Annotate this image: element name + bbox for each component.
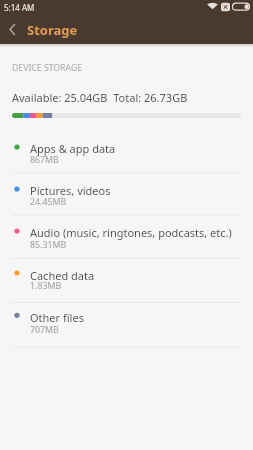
button[interactable] [0,303,253,348]
button[interactable] [0,173,253,215]
staticText: Audio (music, ringtones, podcasts, etc.) [30,225,232,240]
button[interactable] [0,126,253,173]
staticText: 24.45MB [30,196,67,208]
staticText: Pictures, videos [30,183,111,198]
staticText: 5:14 AM [4,2,35,13]
staticText: 85.31MB [30,239,67,251]
staticText: Available: 25.04GB Total: 26.73GB [12,90,188,105]
button[interactable] [0,259,253,303]
staticText: Other files [30,310,84,325]
button[interactable] [0,18,26,44]
staticText: 1.83MB [30,280,62,292]
button[interactable] [0,215,253,259]
staticText: Storage [27,21,78,39]
staticText: DEVICE STORAGE [12,62,83,74]
staticText: 867MB [30,154,59,166]
staticText: Apps & app data [30,141,116,156]
staticText: Cached data [30,268,95,283]
staticText: 707MB [30,324,59,336]
